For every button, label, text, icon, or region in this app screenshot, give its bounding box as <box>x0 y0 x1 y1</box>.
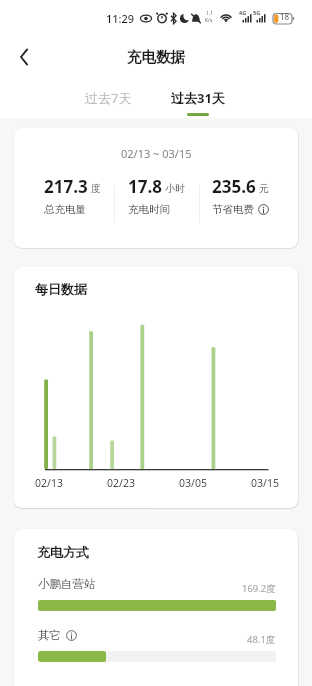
staticText: 小鹏自营站 <box>38 577 96 591</box>
staticText: 235.6 <box>212 175 256 198</box>
staticText: 48.1度 <box>247 633 276 646</box>
staticText: 元 <box>259 182 269 195</box>
button[interactable]: 过去31天 <box>155 84 240 112</box>
staticText: 03/05 <box>179 476 207 490</box>
button[interactable] <box>8 40 42 74</box>
staticText: 1.1 <box>206 10 214 17</box>
staticText: 节省电费 <box>212 203 254 216</box>
staticText: 02/13 ~ 03/15 <box>121 146 192 161</box>
staticText: 169.2度 <box>242 582 276 595</box>
staticText: 充电时间 <box>128 203 170 216</box>
button[interactable]: 节省电费 <box>212 203 269 216</box>
staticText: 02/13 <box>35 476 63 490</box>
staticText: 其它 <box>38 628 61 642</box>
button[interactable]: 过去7天 <box>66 84 151 112</box>
staticText: 充电数据 <box>127 48 185 66</box>
staticText: 18 <box>280 11 290 22</box>
staticText: 03/15 <box>251 476 279 490</box>
staticText: 度 <box>91 182 101 195</box>
staticText: 02/23 <box>107 476 135 490</box>
staticText: 过去31天 <box>171 89 225 107</box>
staticText: K/s <box>205 17 213 24</box>
staticText: 充电方式 <box>37 544 89 560</box>
staticText: 过去7天 <box>85 89 132 107</box>
staticText: 每日数据 <box>35 281 87 297</box>
staticText: 小时 <box>165 182 185 195</box>
staticText: 5G <box>253 9 261 16</box>
staticText: 217.3 <box>44 175 88 198</box>
staticText: 4G <box>239 9 247 16</box>
staticText: 11:29 <box>106 11 135 26</box>
button[interactable]: 其它 <box>38 628 77 642</box>
staticText: 17.8 <box>128 175 162 198</box>
staticText: 总充电量 <box>44 203 86 216</box>
